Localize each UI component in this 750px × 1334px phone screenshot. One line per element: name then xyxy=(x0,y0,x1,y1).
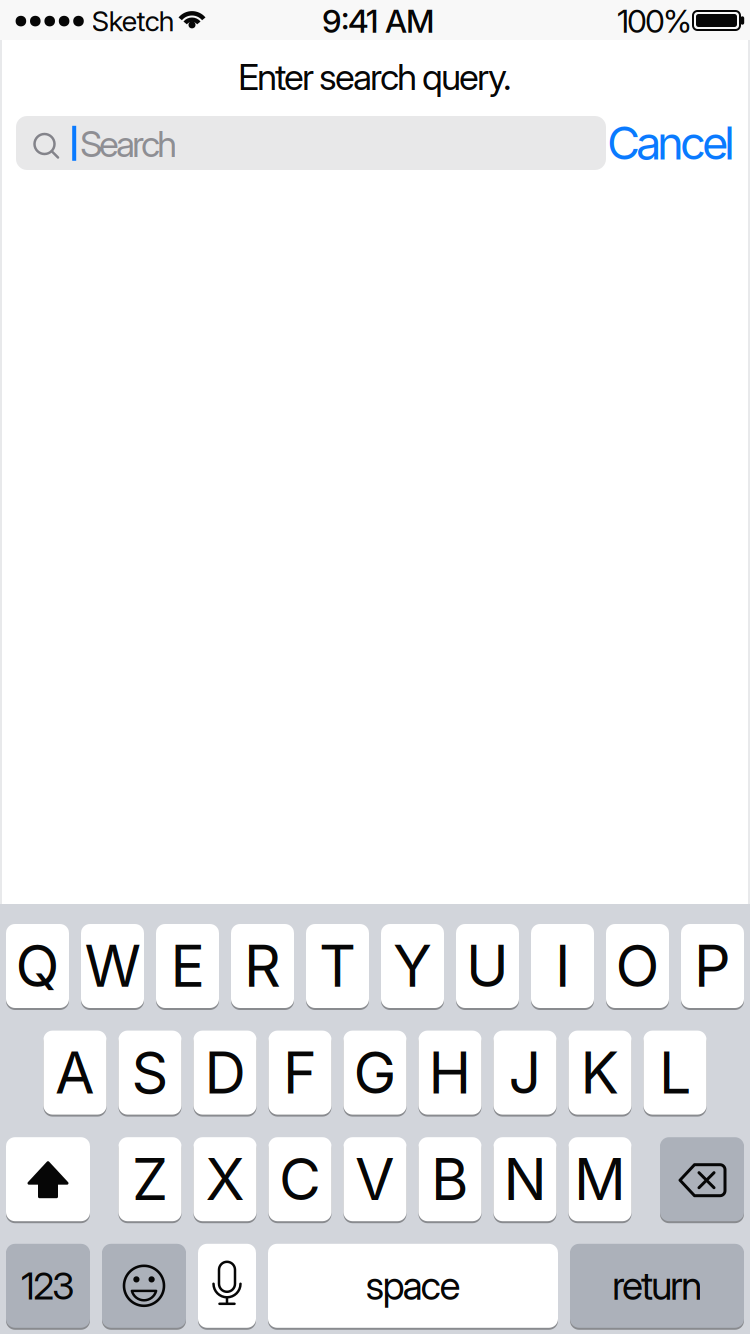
staticText: J xyxy=(508,1038,541,1107)
staticText: W xyxy=(84,931,140,1001)
staticText: R xyxy=(244,931,281,1001)
button[interactable]: I xyxy=(531,924,594,1008)
staticText: B xyxy=(431,1144,469,1214)
button[interactable]: Emoji xyxy=(102,1244,186,1328)
button[interactable]: Z xyxy=(118,1137,181,1221)
button[interactable]: N xyxy=(493,1137,556,1221)
staticText: D xyxy=(204,1038,245,1107)
button[interactable]: Search xyxy=(16,116,606,170)
button[interactable]: A xyxy=(43,1031,106,1115)
staticText: Search xyxy=(80,123,177,165)
button[interactable]: space xyxy=(268,1244,558,1328)
staticText: space xyxy=(365,1263,460,1309)
button[interactable]: C xyxy=(268,1137,331,1221)
staticText: C xyxy=(279,1144,321,1214)
button[interactable]: return xyxy=(570,1244,744,1328)
staticText: N xyxy=(503,1144,546,1214)
staticText: U xyxy=(466,931,509,1001)
staticText: A xyxy=(55,1038,95,1107)
staticText: Q xyxy=(15,931,59,1001)
button[interactable]: J xyxy=(493,1031,556,1115)
button[interactable]: Delete xyxy=(660,1137,744,1221)
button[interactable]: O xyxy=(606,924,669,1008)
button[interactable]: G xyxy=(343,1031,406,1115)
button[interactable]: W xyxy=(81,924,144,1008)
button[interactable]: T xyxy=(306,924,369,1008)
button[interactable]: P xyxy=(681,924,744,1008)
staticText: return xyxy=(612,1263,702,1309)
staticText: O xyxy=(615,931,659,1001)
button[interactable]: B xyxy=(418,1137,481,1221)
staticText: Enter search query. xyxy=(238,56,512,98)
button[interactable]: D xyxy=(193,1031,256,1115)
staticText: Y xyxy=(393,931,432,1001)
staticText: P xyxy=(694,931,731,1001)
button[interactable]: Cancel xyxy=(515,116,735,170)
staticText: E xyxy=(170,931,204,1001)
staticText: L xyxy=(659,1038,691,1107)
button[interactable]: Q xyxy=(6,924,69,1008)
button[interactable]: U xyxy=(456,924,519,1008)
button[interactable]: S xyxy=(118,1031,181,1115)
button[interactable]: Numbers xyxy=(6,1244,90,1328)
button[interactable]: F xyxy=(268,1031,331,1115)
button[interactable]: L xyxy=(643,1031,706,1115)
staticText: 100% xyxy=(617,2,692,40)
staticText: S xyxy=(131,1038,168,1107)
staticText: Cancel xyxy=(607,116,735,170)
button[interactable]: E xyxy=(156,924,219,1008)
button[interactable]: X xyxy=(193,1137,256,1221)
staticText: G xyxy=(353,1038,396,1107)
staticText: H xyxy=(428,1038,471,1107)
staticText: 123 xyxy=(21,1264,75,1308)
staticText: 9:41 AM xyxy=(322,2,434,40)
button[interactable]: H xyxy=(418,1031,481,1115)
staticText: V xyxy=(355,1144,395,1214)
button[interactable]: K xyxy=(568,1031,631,1115)
staticText: Sketch xyxy=(91,4,174,37)
button[interactable]: Dictation xyxy=(198,1244,256,1328)
button[interactable]: Y xyxy=(381,924,444,1008)
staticText: Z xyxy=(132,1144,168,1214)
button[interactable]: V xyxy=(343,1137,406,1221)
button[interactable]: R xyxy=(231,924,294,1008)
button[interactable]: M xyxy=(568,1137,631,1221)
staticText: X xyxy=(205,1144,244,1214)
staticText: T xyxy=(319,931,356,1001)
staticText: I xyxy=(555,931,570,1001)
staticText: F xyxy=(283,1038,317,1107)
staticText: M xyxy=(574,1144,626,1214)
button[interactable]: Shift xyxy=(6,1137,90,1221)
staticText: K xyxy=(580,1038,619,1107)
